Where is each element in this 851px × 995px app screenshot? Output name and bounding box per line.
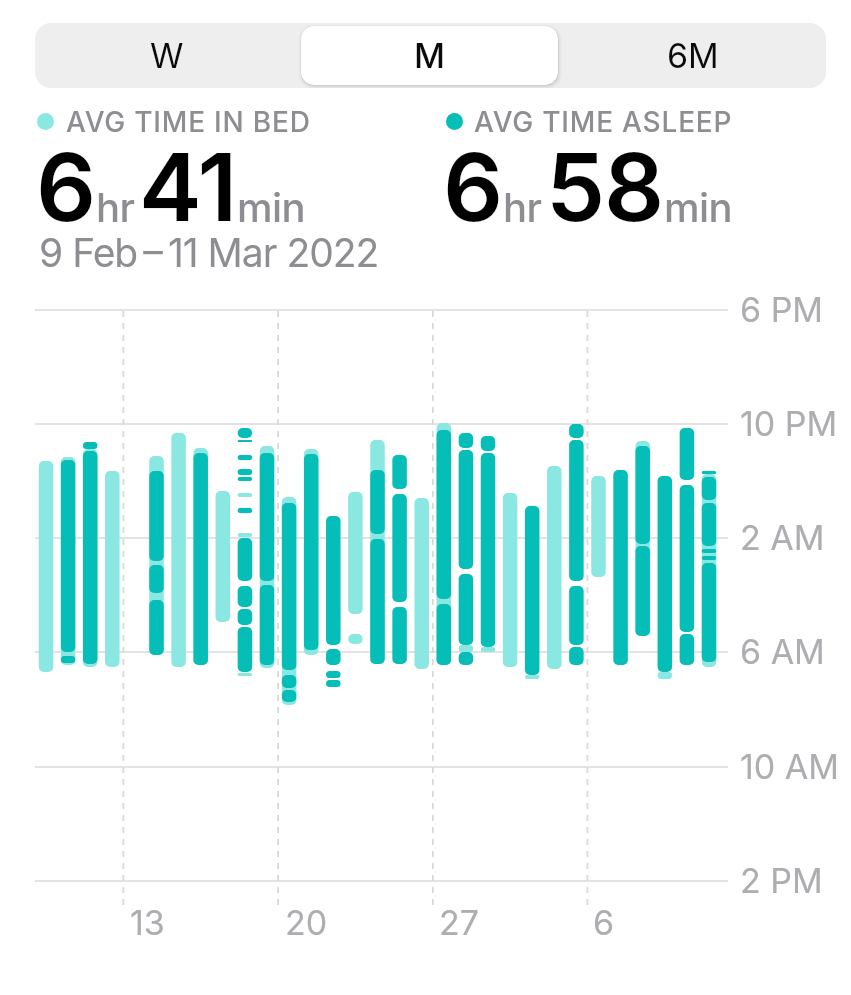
staticText: min (237, 183, 306, 231)
staticText: 10 AM (740, 746, 840, 787)
staticText: 6 (443, 130, 503, 244)
staticText: 2 AM (740, 517, 825, 558)
staticText: 27 (439, 902, 479, 943)
staticText: 2 PM (740, 860, 823, 901)
button[interactable]: M (301, 26, 558, 85)
staticText: 9 Feb – 11 Mar 2022 (39, 229, 379, 276)
staticText: 41 (139, 130, 237, 244)
staticText: 58 (546, 130, 664, 244)
staticText: 6M (667, 35, 719, 76)
staticText: 20 (285, 902, 328, 943)
staticText: 10 PM (740, 403, 838, 444)
staticText: hr (503, 183, 542, 231)
staticText: M (414, 35, 446, 76)
button[interactable]: 6M (561, 23, 824, 88)
button[interactable]: W (35, 23, 298, 88)
staticText: AVG TIME ASLEEP (474, 105, 733, 139)
staticText: 6 (36, 130, 96, 244)
staticText: 6 (593, 902, 615, 943)
staticText: AVG TIME IN BED (66, 105, 311, 139)
staticText: 13 (130, 902, 165, 943)
staticText: 6 PM (740, 289, 824, 330)
staticText: hr (96, 183, 135, 231)
staticText: 6 AM (740, 631, 825, 672)
staticText: min (664, 183, 733, 231)
staticText: W (150, 35, 184, 76)
